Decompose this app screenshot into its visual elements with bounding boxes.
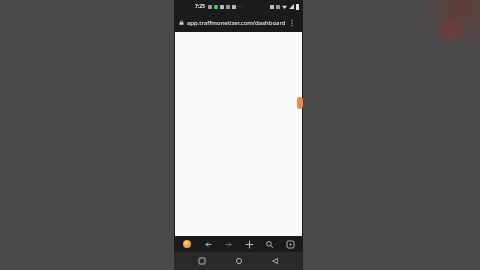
staticText: app.traffmonetizer.com/dashboard (187, 19, 286, 27)
button[interactable]: Tabs (283, 237, 297, 251)
button[interactable]: app.traffmonetizer.com/dashboard (174, 13, 303, 32)
button[interactable]: Account (180, 237, 194, 251)
button[interactable]: More options (286, 17, 298, 29)
staticText: 7:25 (195, 3, 205, 10)
button[interactable]: Home (231, 253, 247, 269)
button[interactable]: Search (262, 237, 276, 251)
button[interactable]: New tab (242, 237, 256, 251)
staticText: ··· (238, 3, 243, 10)
button[interactable]: Recent apps (194, 253, 210, 269)
button[interactable]: Back (267, 253, 283, 269)
button[interactable]: Forward (221, 237, 235, 251)
button[interactable]: Back (201, 237, 215, 251)
